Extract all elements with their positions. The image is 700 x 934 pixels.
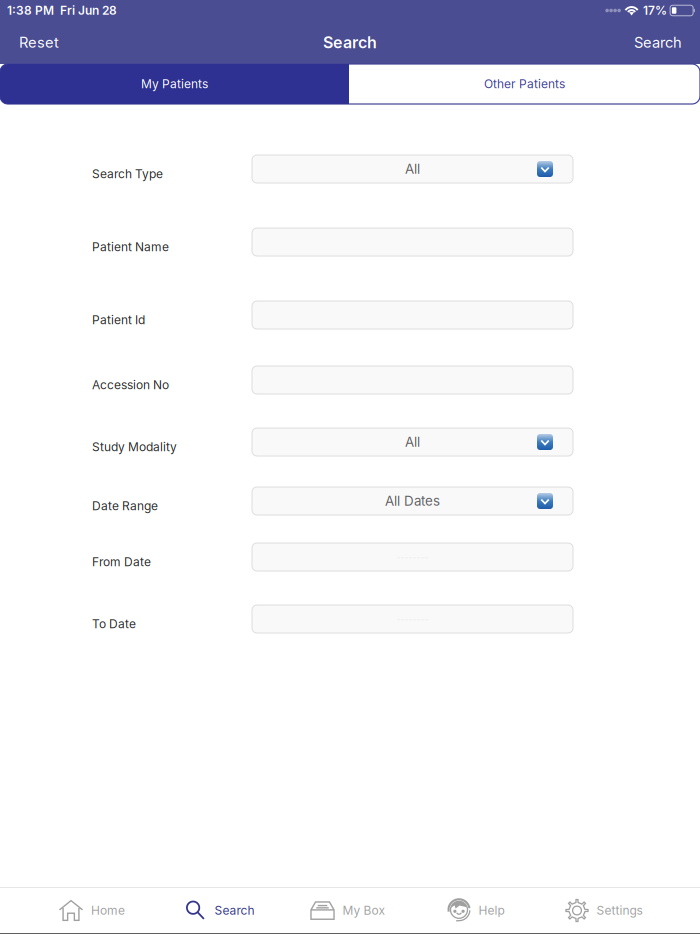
staticText: From Date xyxy=(92,555,151,569)
button[interactable]: Settings xyxy=(540,888,668,933)
staticText: Fri Jun 28 xyxy=(60,3,117,18)
staticText: My Box xyxy=(342,903,385,918)
button[interactable]: My Patients xyxy=(0,64,349,104)
button[interactable]: My Box xyxy=(284,888,412,933)
staticText: All xyxy=(405,434,420,450)
button[interactable]: Home xyxy=(28,888,156,933)
button[interactable]: Reset xyxy=(0,21,73,64)
staticText: Help xyxy=(478,903,504,918)
staticText: All xyxy=(405,161,420,177)
staticText: Settings xyxy=(596,903,642,918)
staticText: Reset xyxy=(19,34,59,51)
staticText: Other Patients xyxy=(484,77,565,91)
button[interactable]: Help xyxy=(412,888,540,933)
staticText: Date Range xyxy=(92,499,158,513)
staticText: Accession No xyxy=(92,378,169,392)
staticText: My Patients xyxy=(141,77,208,91)
staticText: To Date xyxy=(92,617,136,631)
button[interactable]: Search xyxy=(156,888,284,933)
staticText: Search Type xyxy=(92,167,163,181)
staticText: All Dates xyxy=(385,493,440,509)
staticText: Home xyxy=(91,903,125,918)
staticText: Search xyxy=(323,33,377,52)
button[interactable]: Search xyxy=(620,21,700,64)
staticText: Search xyxy=(214,903,254,918)
staticText: Patient Name xyxy=(92,240,169,254)
staticText: 17% xyxy=(643,3,667,18)
staticText: 1:38 PM xyxy=(7,3,54,18)
staticText: Patient Id xyxy=(92,313,145,327)
staticText: Study Modality xyxy=(92,440,177,454)
staticText: Search xyxy=(634,34,682,51)
button[interactable]: Other Patients xyxy=(349,64,700,104)
